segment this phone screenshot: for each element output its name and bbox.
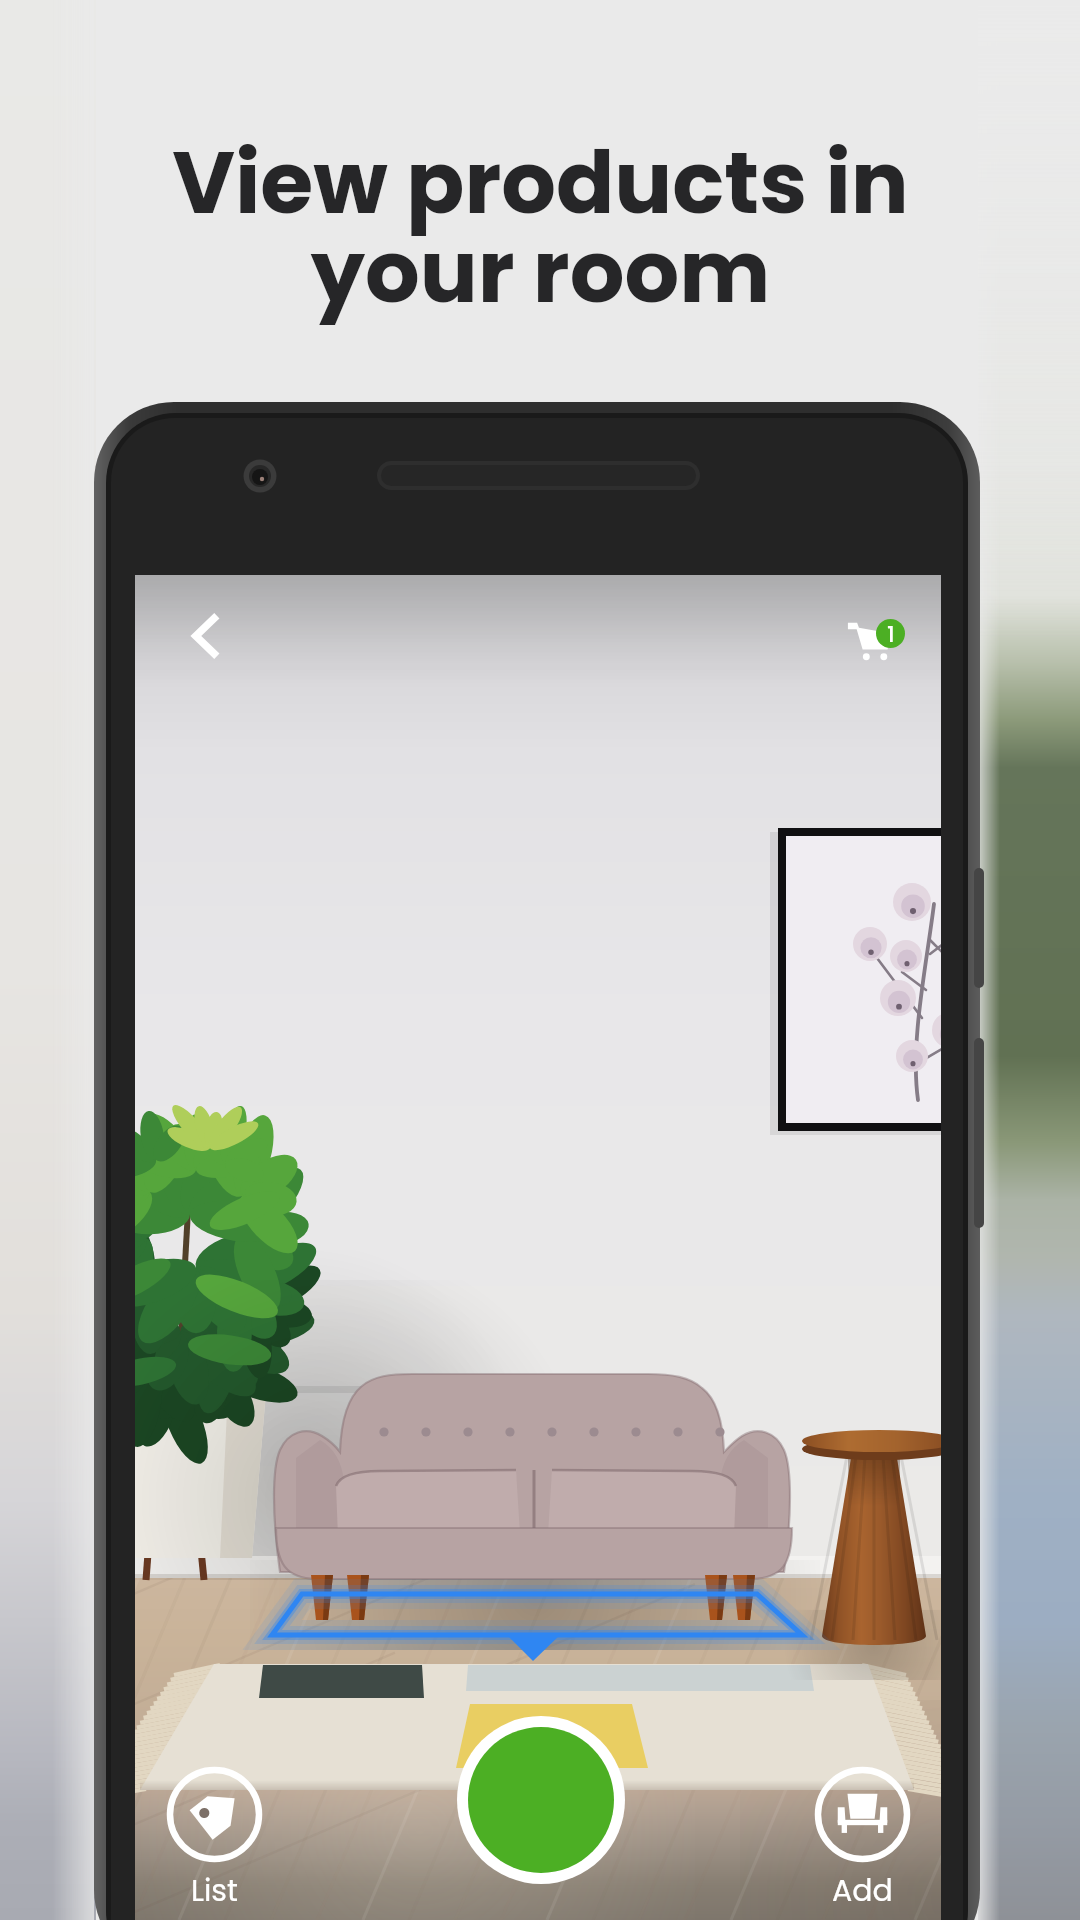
button[interactable]: List xyxy=(166,1766,263,1912)
staticText: Add xyxy=(832,1870,893,1912)
button[interactable]: Add xyxy=(814,1766,911,1912)
button[interactable]: Place product xyxy=(457,1716,625,1884)
staticText: 1 xyxy=(887,619,895,648)
staticText: View products in your room xyxy=(172,123,909,332)
staticText: List xyxy=(191,1870,238,1912)
button[interactable]: Shopping cart xyxy=(847,620,893,666)
button[interactable]: Back xyxy=(172,602,240,670)
